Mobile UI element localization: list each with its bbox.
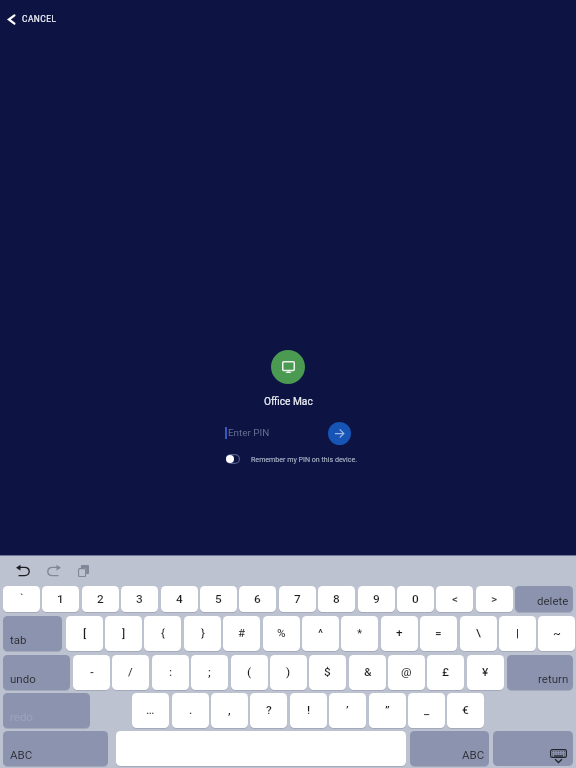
staticText: 5 [215, 592, 222, 606]
button[interactable]: / [112, 655, 149, 690]
button[interactable]: redo [3, 693, 90, 728]
staticText: % [277, 626, 286, 640]
button[interactable]: _ [408, 693, 445, 728]
button[interactable]: ¥ [467, 655, 504, 690]
staticText: undo [10, 672, 36, 685]
staticText: ¥ [482, 665, 489, 679]
staticText: \ [476, 626, 481, 640]
button[interactable]: 1 [42, 586, 79, 612]
staticText: = [435, 626, 442, 640]
button[interactable]: - [73, 655, 110, 690]
staticText: ~ [553, 626, 561, 640]
button[interactable]: $ [309, 655, 346, 690]
button[interactable]: Remember my PIN on this device. [224, 452, 360, 466]
button[interactable]: ) [270, 655, 307, 690]
button[interactable]: & [349, 655, 386, 690]
button[interactable]: > [476, 586, 513, 612]
button[interactable]: # [223, 616, 260, 651]
staticText: redo [10, 710, 33, 723]
staticText: # [238, 626, 246, 640]
button[interactable]: = [420, 616, 457, 651]
staticText: € [462, 703, 469, 717]
button[interactable]: + [381, 616, 418, 651]
button[interactable]: return [507, 655, 573, 690]
staticText: ) [286, 665, 291, 679]
button[interactable]: ^ [302, 616, 339, 651]
button[interactable]: . [172, 693, 209, 728]
button[interactable]: \ [460, 616, 497, 651]
staticText: * [357, 626, 363, 640]
staticText: , [228, 703, 231, 717]
button[interactable]: £ [427, 655, 464, 690]
staticText: 1 [57, 592, 64, 606]
button[interactable]: 5 [200, 586, 237, 612]
button[interactable]: ! [290, 693, 327, 728]
staticText: 2 [97, 592, 104, 606]
staticText: ; [208, 665, 211, 679]
staticText: > [491, 592, 498, 606]
staticText: ^ [318, 626, 324, 640]
button[interactable]: 7 [279, 586, 316, 612]
staticText: ’ [346, 703, 349, 717]
button[interactable]: Paste [72, 562, 94, 579]
button[interactable]: ABC [3, 731, 108, 766]
staticText: delete [537, 594, 569, 607]
staticText: ` [20, 592, 24, 605]
button[interactable]: ABC [410, 731, 489, 766]
button[interactable]: 9 [358, 586, 395, 612]
button[interactable]: 3 [121, 586, 158, 612]
button[interactable]: € [447, 693, 484, 728]
button[interactable]: … [132, 693, 169, 728]
button[interactable]: ? [250, 693, 287, 728]
staticText: @ [401, 665, 412, 679]
button[interactable]: Undo [12, 562, 34, 579]
button[interactable]: 4 [161, 586, 198, 612]
button[interactable]: * [341, 616, 378, 651]
staticText: Office Mac [264, 396, 313, 408]
button[interactable]: < [436, 586, 473, 612]
button[interactable]: [ [66, 616, 103, 651]
button[interactable]: undo [3, 655, 70, 690]
button[interactable]: ( [231, 655, 268, 690]
button[interactable]: % [263, 616, 300, 651]
button[interactable]: Hide keyboard [493, 731, 573, 766]
staticText: ] [122, 626, 126, 640]
button[interactable]: Submit PIN [328, 422, 351, 445]
button[interactable]: Redo [43, 562, 65, 579]
staticText: … [146, 703, 155, 717]
staticText: £ [442, 665, 449, 679]
staticText: < [452, 592, 458, 606]
button[interactable]: 8 [318, 586, 355, 612]
staticText: 4 [176, 592, 183, 606]
button[interactable]: ] [105, 616, 142, 651]
staticText: CANCEL [22, 14, 57, 24]
button[interactable]: ; [191, 655, 228, 690]
button[interactable]: ” [369, 693, 406, 728]
staticText: { [161, 626, 165, 640]
button[interactable]: ` [3, 586, 40, 612]
staticText: ( [247, 665, 252, 679]
button[interactable]: CANCEL [5, 11, 60, 27]
button[interactable]: tab [3, 616, 62, 651]
button[interactable]: , [211, 693, 248, 728]
button[interactable]: | [499, 616, 536, 651]
staticText: ABC [10, 748, 33, 761]
button[interactable]: 2 [82, 586, 119, 612]
button[interactable]: 6 [239, 586, 276, 612]
staticText: & [364, 665, 372, 679]
button[interactable]: : [152, 655, 189, 690]
staticText: . [189, 703, 193, 717]
button[interactable]: delete [515, 586, 573, 612]
button[interactable]: @ [388, 655, 425, 690]
staticText: 0 [412, 592, 419, 606]
staticText: return [538, 672, 569, 685]
staticText: Remember my PIN on this device. [251, 455, 358, 463]
button[interactable]: ’ [329, 693, 366, 728]
staticText: ? [266, 703, 272, 717]
staticText: : [169, 665, 173, 679]
button[interactable]: } [184, 616, 221, 651]
button[interactable]: { [144, 616, 181, 651]
button[interactable]: ~ [538, 616, 575, 651]
button[interactable]: 0 [397, 586, 434, 612]
